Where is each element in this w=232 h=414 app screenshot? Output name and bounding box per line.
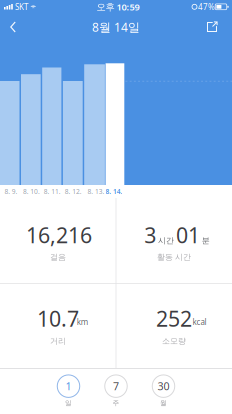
staticText: 47%: [198, 1, 215, 12]
staticText: 30: [157, 379, 169, 393]
staticText: 거리: [50, 336, 66, 346]
staticText: 일: [65, 399, 72, 407]
staticText: 8. 11.: [44, 187, 61, 196]
staticText: 시간: [158, 236, 174, 245]
staticText: km: [77, 317, 88, 327]
staticText: 걸음: [50, 252, 66, 262]
staticText: 8. 14.: [105, 187, 122, 196]
staticText: 1: [65, 379, 71, 393]
staticText: 8. 10.: [23, 187, 40, 196]
staticText: 16,216: [26, 221, 92, 249]
button[interactable]: 7: [96, 374, 136, 408]
staticText: 오후 10:59: [96, 1, 139, 13]
staticText: 8. 12.: [65, 187, 82, 196]
staticText: 분: [202, 236, 210, 245]
button[interactable]: Share: [206, 21, 217, 32]
staticText: 활동 시간: [157, 252, 191, 262]
button[interactable]: Back: [10, 21, 21, 33]
staticText: 8. 9.: [4, 187, 18, 196]
staticText: 252: [156, 304, 192, 333]
staticText: 소모량: [162, 336, 186, 346]
staticText: 7: [113, 379, 119, 393]
staticText: kcal: [193, 317, 207, 327]
staticText: 8. 13.: [87, 187, 104, 196]
staticText: 주: [112, 399, 119, 407]
staticText: 3: [144, 221, 156, 249]
button[interactable]: 30: [143, 374, 183, 408]
button[interactable]: 1: [48, 374, 88, 408]
staticText: 8월 14일: [92, 19, 140, 35]
staticText: 01: [176, 221, 200, 249]
staticText: 월: [160, 399, 167, 407]
staticText: 10.7: [37, 304, 79, 333]
staticText: SKT: [15, 1, 28, 12]
